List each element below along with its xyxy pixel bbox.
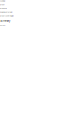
staticText: Download receipt xyxy=(0,11,12,13)
staticText: Order confirmation xyxy=(0,15,14,17)
staticText: RECEIPT xyxy=(0,24,6,26)
staticText: Summary xyxy=(0,19,10,22)
staticText: Order xyxy=(0,4,5,6)
staticText: Subtotal xyxy=(0,0,5,2)
staticText: #10-2948 xyxy=(0,7,7,9)
